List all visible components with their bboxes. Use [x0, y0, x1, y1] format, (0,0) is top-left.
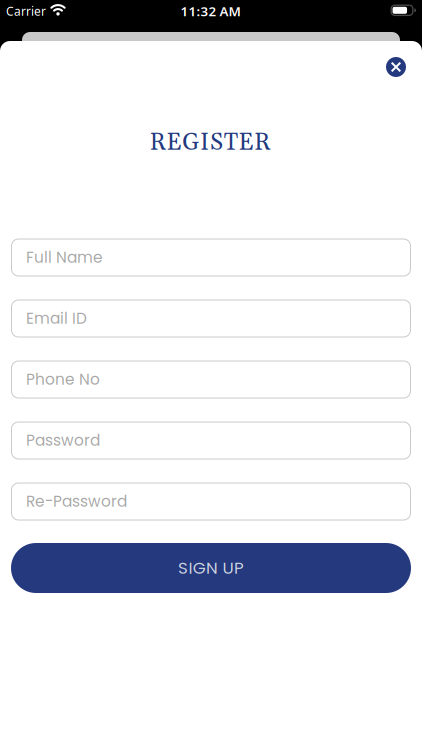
- staticText: REGISTER: [150, 128, 270, 158]
- staticText: Re-Password: [26, 491, 127, 512]
- staticText: Carrier: [6, 3, 46, 19]
- staticText: SIGN UP: [178, 556, 244, 580]
- staticText: Password: [26, 430, 100, 451]
- staticText: Email ID: [26, 308, 87, 329]
- button[interactable]: Full Name: [11, 238, 411, 276]
- button[interactable]: Phone No: [11, 360, 411, 398]
- button[interactable]: SIGN UP: [11, 543, 411, 593]
- button[interactable]: Password: [11, 421, 411, 459]
- staticText: 11:32 AM: [180, 2, 240, 20]
- button[interactable]: Email ID: [11, 299, 411, 337]
- staticText: Phone No: [26, 369, 100, 390]
- button[interactable]: Re-Password: [11, 482, 411, 520]
- staticText: Full Name: [26, 247, 103, 268]
- button[interactable]: [381, 52, 411, 82]
